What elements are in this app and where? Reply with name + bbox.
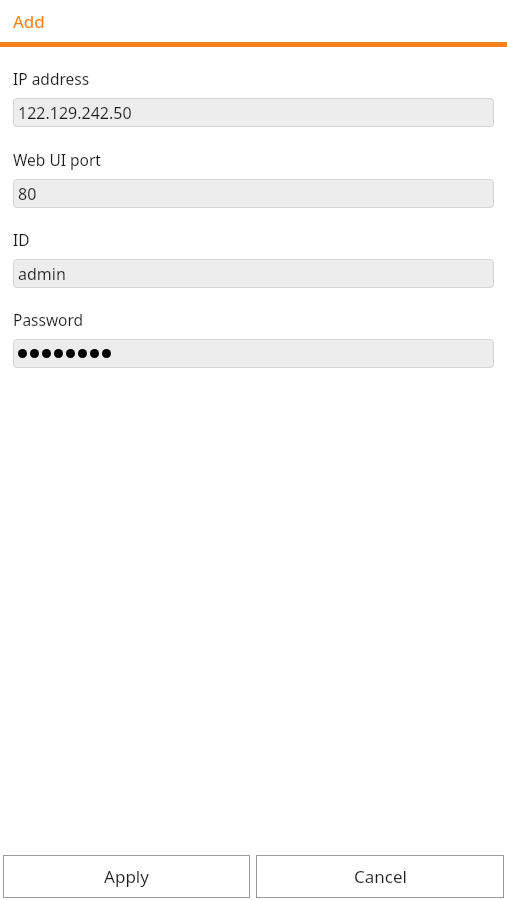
button[interactable]: admin	[13, 259, 494, 288]
staticText: IP address	[13, 68, 90, 89]
staticText: Apply	[104, 865, 149, 888]
button[interactable]: Cancel	[256, 855, 504, 898]
button[interactable]: Apply	[3, 855, 250, 898]
button[interactable]: 80	[13, 179, 494, 208]
staticText: Cancel	[354, 865, 407, 888]
staticText: 80	[18, 183, 37, 205]
button[interactable]	[13, 339, 494, 368]
staticText: Web UI port	[13, 149, 101, 170]
staticText: 122.129.242.50	[18, 102, 132, 124]
button[interactable]: 122.129.242.50	[13, 98, 494, 127]
staticText: Add	[13, 10, 45, 33]
staticText: Password	[13, 309, 84, 330]
staticText: ID	[13, 229, 30, 250]
staticText: admin	[18, 263, 66, 285]
